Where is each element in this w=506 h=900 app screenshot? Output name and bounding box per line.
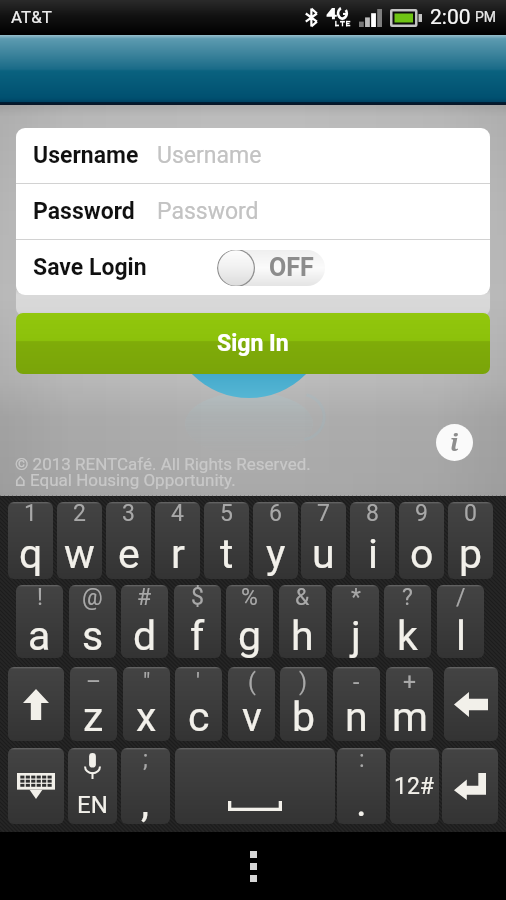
button[interactable]: : bbox=[337, 748, 386, 824]
other: Shift bbox=[8, 667, 64, 741]
staticText: ? bbox=[402, 585, 413, 611]
staticText: % bbox=[241, 585, 258, 611]
staticText: ( bbox=[248, 669, 256, 696]
staticText: © 2013 RENTCafé. All Rights Reserved. bbox=[15, 454, 311, 474]
staticText: ⌂ Equal Housing Opportunity. bbox=[15, 470, 236, 490]
staticText: s bbox=[82, 612, 104, 658]
staticText: $ bbox=[191, 585, 204, 611]
button[interactable]: ! bbox=[16, 585, 63, 658]
staticText: Username bbox=[33, 142, 157, 169]
button[interactable]: 5 bbox=[204, 502, 249, 579]
other: Space bbox=[175, 748, 335, 824]
button[interactable]: 8 bbox=[350, 502, 395, 579]
button[interactable]: 9 bbox=[399, 502, 444, 579]
staticText: n bbox=[345, 693, 368, 741]
button[interactable]: ( bbox=[228, 667, 275, 741]
staticText: g bbox=[238, 612, 262, 658]
staticText: Save Login bbox=[33, 254, 147, 281]
button[interactable]: * bbox=[332, 585, 379, 658]
staticText: a bbox=[28, 612, 51, 658]
staticText: EN bbox=[77, 791, 108, 819]
button[interactable]: + bbox=[386, 667, 433, 741]
staticText: Sign In bbox=[217, 330, 289, 357]
staticText: + bbox=[403, 669, 417, 696]
button[interactable]: – bbox=[70, 667, 117, 741]
staticText: ) bbox=[299, 669, 308, 696]
button[interactable]: Shift bbox=[8, 667, 64, 741]
staticText: w bbox=[64, 530, 95, 578]
button[interactable]: Sign In bbox=[16, 313, 490, 374]
staticText: e bbox=[118, 530, 140, 578]
staticText: PM bbox=[475, 9, 497, 25]
staticText: v bbox=[242, 693, 262, 741]
staticText: 1 bbox=[24, 502, 37, 527]
staticText: - bbox=[353, 669, 360, 696]
button[interactable]: 1 bbox=[8, 502, 53, 579]
staticText: 0 bbox=[464, 502, 477, 527]
button[interactable]: Info bbox=[436, 424, 473, 461]
staticText: Password bbox=[33, 198, 157, 225]
staticText: 9 bbox=[415, 502, 428, 527]
button[interactable]: EN bbox=[68, 748, 117, 824]
button[interactable]: 0 bbox=[448, 502, 493, 579]
staticText: f bbox=[190, 612, 205, 658]
staticText: u bbox=[312, 530, 335, 578]
button[interactable]: ? bbox=[384, 585, 431, 658]
staticText: * bbox=[351, 585, 361, 611]
button[interactable]: ; bbox=[121, 748, 170, 824]
button[interactable]: % bbox=[226, 585, 273, 658]
staticText: & bbox=[295, 585, 310, 611]
staticText: : bbox=[359, 748, 365, 773]
staticText: Password bbox=[157, 198, 259, 225]
button[interactable]: ' bbox=[175, 667, 222, 741]
staticText: t bbox=[220, 530, 234, 578]
button[interactable]: Save Login toggle, off bbox=[217, 250, 325, 286]
button[interactable]: Username bbox=[16, 128, 490, 183]
staticText: h bbox=[291, 612, 314, 658]
button[interactable]: Enter bbox=[442, 748, 498, 824]
staticText: 4 bbox=[171, 502, 184, 527]
staticText: ; bbox=[143, 748, 148, 773]
staticText: ' bbox=[196, 669, 201, 696]
button[interactable]: / bbox=[437, 585, 484, 658]
button[interactable]: Password bbox=[16, 184, 490, 239]
staticText: 2:00 bbox=[430, 5, 471, 30]
button[interactable]: Hide keyboard bbox=[8, 748, 64, 824]
button[interactable]: More options bbox=[224, 837, 282, 895]
staticText: @ bbox=[82, 585, 103, 611]
button[interactable]: & bbox=[279, 585, 326, 658]
button[interactable]: - bbox=[333, 667, 380, 741]
button[interactable]: 12# bbox=[390, 748, 439, 824]
staticText: 6 bbox=[269, 502, 282, 527]
button[interactable]: 2 bbox=[57, 502, 102, 579]
button[interactable]: 4 bbox=[155, 502, 200, 579]
staticText: c bbox=[188, 693, 210, 741]
staticText: m bbox=[392, 693, 428, 741]
staticText: 2 bbox=[73, 502, 86, 527]
button[interactable]: 3 bbox=[106, 502, 151, 579]
button[interactable]: @ bbox=[69, 585, 116, 658]
staticText: k bbox=[397, 612, 418, 658]
other: Backspace bbox=[444, 667, 498, 741]
staticText: # bbox=[137, 585, 152, 611]
other: Enter bbox=[442, 748, 498, 824]
button[interactable]: " bbox=[123, 667, 170, 741]
button[interactable]: $ bbox=[174, 585, 221, 658]
staticText: 7 bbox=[317, 502, 330, 527]
staticText: o bbox=[410, 530, 434, 578]
staticText: p bbox=[459, 530, 483, 578]
button[interactable]: 6 bbox=[253, 502, 298, 579]
button[interactable]: Space bbox=[175, 748, 335, 824]
staticText: / bbox=[456, 585, 466, 611]
button[interactable]: # bbox=[121, 585, 168, 658]
staticText: 12# bbox=[394, 773, 435, 800]
staticText: ! bbox=[37, 585, 43, 611]
button[interactable]: 7 bbox=[301, 502, 346, 579]
staticText: OFF bbox=[269, 253, 314, 282]
staticText: . bbox=[356, 778, 367, 824]
staticText: , bbox=[141, 778, 150, 824]
button[interactable]: Backspace bbox=[444, 667, 498, 741]
button[interactable]: ) bbox=[280, 667, 327, 741]
staticText: – bbox=[86, 669, 102, 696]
other: Hide keyboard bbox=[8, 748, 64, 824]
